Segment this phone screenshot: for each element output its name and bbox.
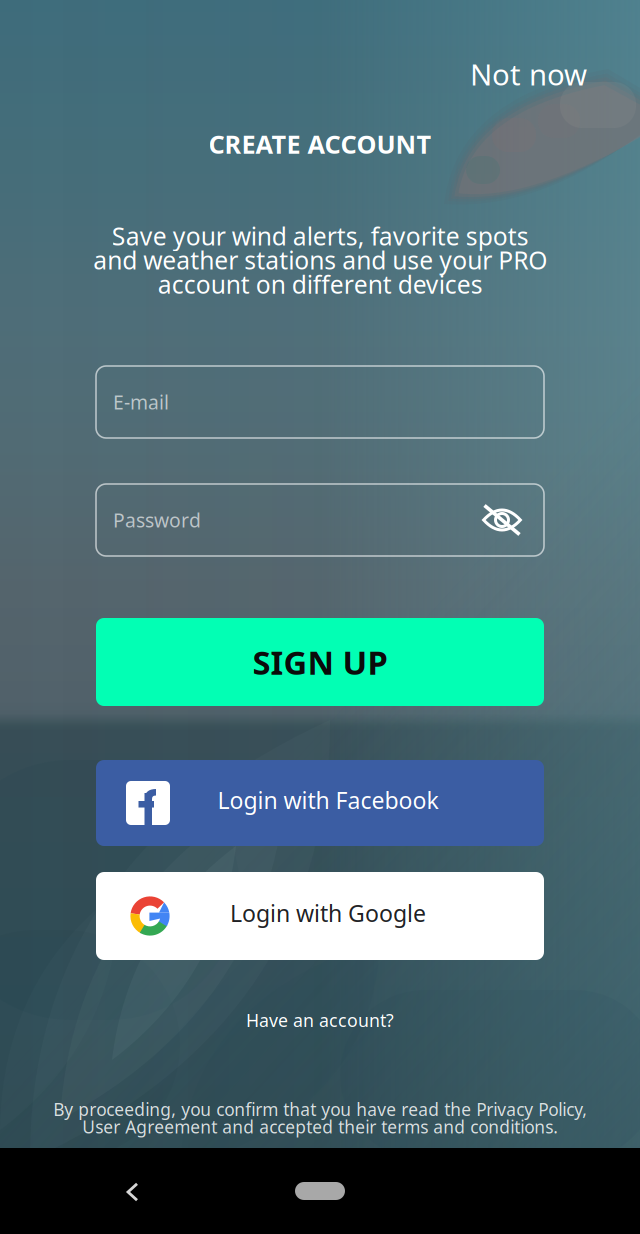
staticText: E-mail <box>113 389 169 415</box>
staticText: Login with Facebook <box>217 784 438 816</box>
staticText: By proceeding, you confirm that you have… <box>53 1097 587 1139</box>
staticText: Not now <box>470 54 587 94</box>
button[interactable]: SIGN UP <box>96 618 544 706</box>
button[interactable]: Back <box>126 1182 139 1202</box>
staticText: Save your wind alerts, favorite spots an… <box>93 219 547 301</box>
button[interactable]: Login with Facebook <box>96 760 544 846</box>
staticText: Password <box>113 507 201 533</box>
button[interactable]: Not now <box>400 48 600 100</box>
staticText: Have an account? <box>246 1008 394 1032</box>
button[interactable]: E-mail <box>96 366 544 438</box>
button[interactable]: Home <box>295 1182 345 1200</box>
button[interactable]: Show password <box>482 503 522 537</box>
staticText: SIGN UP <box>252 640 387 684</box>
staticText: Login with Google <box>230 897 426 929</box>
button[interactable]: Have an account? <box>220 996 420 1044</box>
staticText: CREATE ACCOUNT <box>208 127 431 161</box>
button[interactable]: Login with Google <box>96 872 544 960</box>
